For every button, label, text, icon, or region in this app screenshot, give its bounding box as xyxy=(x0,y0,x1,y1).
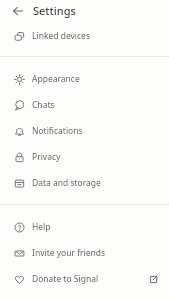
staticText: Appearance xyxy=(32,73,80,85)
staticText: Data and storage xyxy=(32,177,101,189)
button[interactable]: Donate to Signal xyxy=(0,266,169,292)
button[interactable]: Invite your friends xyxy=(0,240,169,266)
button[interactable]: Back xyxy=(11,4,24,17)
staticText: Invite your friends xyxy=(32,247,106,259)
button[interactable]: Appearance xyxy=(0,66,169,92)
staticText: Privacy xyxy=(32,151,61,163)
button[interactable]: Data and storage xyxy=(0,170,169,196)
button[interactable]: Help xyxy=(0,214,169,240)
staticText: Chats xyxy=(32,99,55,111)
button[interactable]: Privacy xyxy=(0,144,169,170)
staticText: Help xyxy=(32,221,51,233)
button[interactable]: Notifications xyxy=(0,118,169,144)
staticText: Notifications xyxy=(32,125,83,137)
staticText: Donate to Signal xyxy=(32,273,99,285)
other: Opens in browser xyxy=(149,275,158,284)
staticText: Linked devices xyxy=(32,30,90,42)
staticText: Settings xyxy=(33,3,76,18)
button[interactable]: Chats xyxy=(0,92,169,118)
button[interactable]: Linked devices xyxy=(0,23,169,49)
